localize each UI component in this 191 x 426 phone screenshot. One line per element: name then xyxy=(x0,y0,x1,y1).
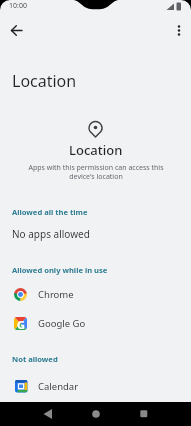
staticText: Calendar xyxy=(38,380,79,393)
staticText: Location xyxy=(12,70,77,92)
staticText: Google Go xyxy=(38,317,86,330)
button[interactable] xyxy=(7,21,26,40)
button[interactable]: Chrome xyxy=(0,282,191,307)
staticText: Chrome xyxy=(38,288,74,301)
staticText: 10:00 xyxy=(9,1,27,11)
button[interactable]: Calendar xyxy=(0,374,191,399)
staticText: Not allowed xyxy=(12,354,58,364)
staticText: Apps with this permission can access thi… xyxy=(28,163,164,181)
button[interactable] xyxy=(171,21,189,39)
button[interactable] xyxy=(36,402,60,426)
button[interactable] xyxy=(132,402,156,426)
staticText: Allowed only while in use xyxy=(12,265,108,275)
button[interactable] xyxy=(84,402,108,426)
staticText: Location xyxy=(69,141,123,159)
button[interactable]: No apps allowed xyxy=(0,223,191,245)
staticText: No apps allowed xyxy=(12,227,90,241)
staticText: Allowed all the time xyxy=(12,207,88,217)
button[interactable]: G xyxy=(0,311,191,336)
staticText: G xyxy=(17,317,25,330)
